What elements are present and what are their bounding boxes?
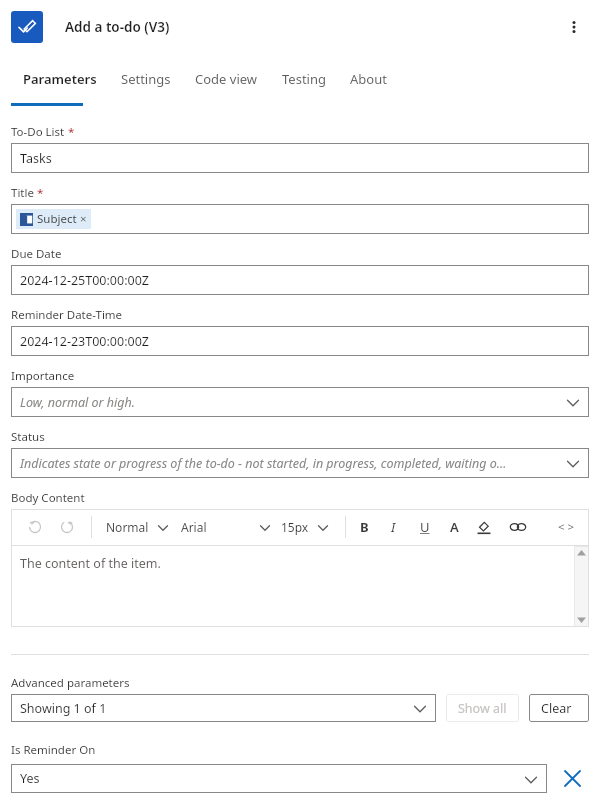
staticText: To-Do List [11, 124, 65, 140]
staticText: * [34, 185, 44, 201]
staticText: Testing [282, 70, 326, 88]
button[interactable]: Code view [183, 54, 270, 103]
button[interactable]: A [450, 518, 459, 536]
staticText: Subject [37, 211, 77, 227]
button[interactable]: To Do connector [11, 11, 43, 43]
staticText: 2024-12-23T00:00:00Z [20, 333, 149, 350]
button[interactable]: Indicates state or progress of the to-do… [11, 448, 589, 478]
button[interactable]: 2024-12-23T00:00:00Z [11, 326, 589, 356]
staticText: Yes [20, 770, 521, 787]
button[interactable]: B [360, 518, 369, 536]
staticText: Body Content [11, 490, 85, 506]
button[interactable]: Testing [270, 54, 338, 103]
staticText: 15px [281, 519, 309, 535]
button[interactable]: Clear all [529, 694, 589, 722]
staticText: Importance [11, 368, 75, 384]
staticText: Advanced parameters [11, 675, 130, 691]
button[interactable]: < > [558, 519, 575, 535]
staticText: The content of the item. [20, 555, 161, 572]
button[interactable]: Yes [11, 764, 547, 793]
staticText: Indicates state or progress of the to-do… [20, 455, 563, 472]
button[interactable]: About [338, 54, 399, 103]
staticText: About [350, 70, 387, 88]
staticText: Normal [106, 519, 149, 535]
button[interactable]: Undo [25, 517, 45, 537]
staticText: Tasks [20, 150, 52, 167]
staticText: Title [11, 185, 34, 201]
button[interactable]: Subject [11, 204, 589, 234]
staticText: Show all [458, 700, 507, 717]
button[interactable]: 2024-12-25T00:00:00Z [11, 265, 589, 295]
button[interactable]: Highlight [475, 518, 493, 536]
staticText: Parameters [23, 70, 97, 88]
button[interactable]: U [420, 518, 430, 536]
staticText: Is Reminder On [11, 742, 96, 758]
button[interactable]: Showing 1 of 1 [11, 694, 436, 722]
staticText: Add a to-do (V3) [65, 18, 170, 36]
staticText: Low, normal or high. [20, 394, 563, 411]
button[interactable]: Remove [555, 761, 589, 795]
staticText: Due Date [11, 246, 62, 262]
button[interactable]: Show all [446, 694, 519, 722]
button[interactable]: 15px [281, 513, 333, 541]
button[interactable]: Arial [181, 513, 275, 541]
staticText: Arial [181, 519, 207, 535]
staticText: × [80, 211, 87, 227]
button[interactable]: Normal [106, 513, 173, 541]
staticText: Clear all [541, 700, 577, 717]
staticText: * [65, 124, 75, 140]
staticText: Showing 1 of 1 [20, 700, 410, 717]
button[interactable]: I [391, 518, 396, 536]
button[interactable]: Settings [109, 54, 183, 103]
staticText: Status [11, 429, 45, 445]
button[interactable]: Tasks [11, 143, 589, 173]
button[interactable]: Insert link [509, 518, 527, 536]
button[interactable]: More options [554, 7, 594, 47]
staticText: Reminder Date-Time [11, 307, 123, 323]
button[interactable]: Redo [57, 517, 77, 537]
staticText: 2024-12-25T00:00:00Z [20, 272, 149, 289]
button[interactable]: Low, normal or high. [11, 387, 589, 417]
staticText: Code view [195, 70, 258, 88]
button[interactable]: Parameters [11, 54, 109, 103]
staticText: Settings [121, 70, 171, 88]
